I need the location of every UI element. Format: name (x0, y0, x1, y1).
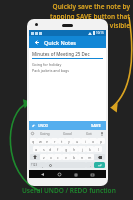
staticText: g (65, 147, 68, 152)
button[interactable]: c (54, 154, 62, 160)
staticText: w (39, 139, 42, 144)
button[interactable]: e (44, 138, 51, 144)
staticText: q (32, 139, 35, 144)
staticText: Useful UNDO / REDO function (22, 186, 116, 195)
staticText: t (61, 139, 63, 144)
staticText: x (50, 155, 52, 160)
button[interactable]: o (89, 138, 97, 144)
button[interactable]: Backspace (94, 154, 105, 160)
staticText: , (42, 163, 43, 168)
staticText: Good (63, 131, 72, 136)
staticText: n (81, 155, 84, 160)
button[interactable]: Shift (30, 154, 40, 160)
staticText: Quickly save the note by (52, 2, 130, 11)
button[interactable]: UNDO (32, 123, 49, 128)
staticText: r (54, 139, 56, 144)
staticText: Going for holiday (32, 62, 62, 67)
button[interactable]: Going (34, 130, 56, 137)
button[interactable]: Comma (39, 162, 46, 168)
button[interactable]: d (47, 146, 54, 152)
staticText: o (92, 139, 95, 144)
staticText: h (73, 147, 76, 152)
button[interactable]: x (47, 154, 54, 160)
staticText: y (68, 139, 70, 144)
staticText: Pack jackets and bags (32, 68, 69, 73)
button[interactable]: n (78, 154, 86, 160)
staticText: b (73, 155, 76, 160)
button[interactable]: Symbols (30, 162, 39, 168)
button[interactable]: s (40, 146, 47, 152)
staticText: z (43, 155, 45, 160)
staticText: ?123 (31, 163, 38, 167)
staticText: c (57, 155, 59, 160)
staticText: 10:15 (96, 31, 104, 35)
button[interactable]: Voice input (100, 132, 104, 136)
button[interactable]: z (40, 154, 47, 160)
staticText: SAVE (91, 123, 101, 128)
staticText: Minutes of Meeting 25 Dec (32, 51, 90, 57)
button[interactable]: Settings (46, 162, 54, 168)
staticText: p (100, 139, 103, 144)
button[interactable]: Back (32, 38, 41, 47)
button[interactable]: a (33, 146, 40, 152)
button[interactable]: p (97, 138, 105, 144)
staticText: Got (86, 131, 92, 136)
button[interactable]: b (70, 154, 78, 160)
button[interactable]: Period (86, 162, 94, 168)
staticText: u (76, 139, 79, 144)
staticText: . (90, 163, 91, 168)
button[interactable]: r (51, 138, 58, 144)
button[interactable]: SAVE (89, 122, 103, 129)
staticText: tapping SAVE button that always visible (34, 12, 130, 30)
button[interactable]: Good (56, 130, 78, 137)
button[interactable]: Emoji (31, 132, 34, 135)
button[interactable]: t (58, 138, 65, 144)
button[interactable]: l (94, 146, 102, 152)
button[interactable]: m (86, 154, 94, 160)
button[interactable]: Back (39, 171, 46, 178)
button[interactable]: u (73, 138, 81, 144)
button[interactable]: Enter (94, 162, 105, 168)
staticText: s (43, 147, 45, 152)
button[interactable]: v (62, 154, 70, 160)
button[interactable]: h (70, 146, 78, 152)
staticText: UNDO (38, 123, 49, 128)
staticText: k (89, 147, 91, 152)
staticText: v (65, 155, 67, 160)
button[interactable]: w (37, 138, 44, 144)
button[interactable]: j (78, 146, 86, 152)
staticText: m (88, 155, 92, 160)
button[interactable]: Hide keyboard (89, 171, 96, 178)
button[interactable]: Home (56, 171, 63, 178)
button[interactable]: g (62, 146, 70, 152)
button[interactable]: y (65, 138, 73, 144)
button[interactable]: Got (78, 130, 100, 137)
staticText: j (82, 147, 83, 152)
staticText: e (46, 139, 49, 144)
staticText: a (35, 147, 38, 152)
staticText: Going (40, 131, 50, 136)
button[interactable]: f (54, 146, 62, 152)
button[interactable]: Recent apps (72, 171, 79, 178)
button[interactable]: q (30, 138, 37, 144)
staticText: l (98, 147, 99, 152)
button[interactable]: k (86, 146, 94, 152)
staticText: f (57, 147, 59, 152)
staticText: Quick Notes (44, 39, 77, 46)
button[interactable]: i (81, 138, 89, 144)
staticText: i (85, 139, 86, 144)
staticText: d (49, 147, 52, 152)
